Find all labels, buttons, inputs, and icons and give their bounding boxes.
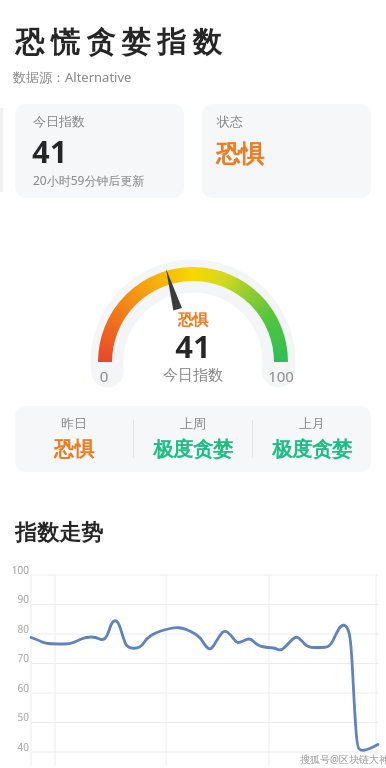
staticText: 指数走势 <box>15 519 103 547</box>
staticText: 90 <box>1 592 29 606</box>
staticText: 50 <box>1 710 29 724</box>
button[interactable]: 上周 <box>134 406 252 472</box>
staticText: 恐惧 <box>54 437 94 462</box>
staticText: 100 <box>1 563 29 577</box>
staticText: 今日指数 <box>33 113 85 129</box>
staticText: 恐惧 <box>216 139 264 169</box>
button[interactable]: 状态 <box>202 104 371 198</box>
button[interactable]: 昨日 <box>15 406 133 472</box>
staticText: 100 <box>251 366 311 386</box>
staticText: 41 <box>0 325 386 367</box>
staticText: 80 <box>1 622 29 636</box>
staticText: 20小时59分钟后更新 <box>33 172 145 188</box>
button[interactable]: 上月 <box>253 406 371 472</box>
staticText: 70 <box>1 651 29 665</box>
staticText: 上周 <box>180 415 206 431</box>
staticText: 0 <box>74 366 134 386</box>
staticText: 数据源：Alternative <box>13 68 132 86</box>
staticText: 上月 <box>299 415 325 431</box>
staticText: 状态 <box>217 113 243 129</box>
staticText: 搜狐号@区块链大神 <box>300 752 386 766</box>
button[interactable]: 今日指数 <box>15 104 184 198</box>
staticText: 昨日 <box>61 415 87 431</box>
staticText: 恐慌贪婪指数 <box>12 24 225 61</box>
staticText: 极度贪婪 <box>272 437 352 462</box>
staticText: 恐惧 <box>0 311 386 330</box>
staticText: 今日指数 <box>0 366 386 385</box>
staticText: 41 <box>32 130 68 172</box>
staticText: 40 <box>1 740 29 754</box>
staticText: 60 <box>1 681 29 695</box>
staticText: 极度贪婪 <box>153 437 233 462</box>
